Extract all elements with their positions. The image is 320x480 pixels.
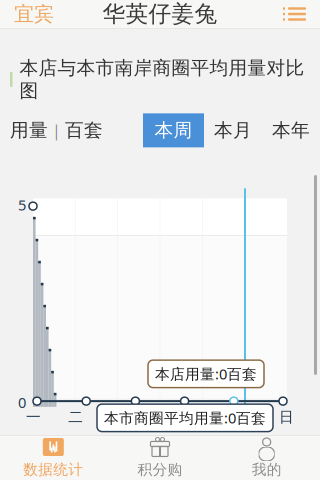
button[interactable]: 菜单 xyxy=(283,1,320,27)
staticText: | xyxy=(52,120,61,141)
button[interactable]: 数据统计 xyxy=(0,431,107,480)
staticText: 本月 xyxy=(214,119,252,142)
staticText: 本周 xyxy=(154,119,192,142)
staticText: 六 xyxy=(237,408,252,426)
staticText: 本市商圈平均用量:0百套 xyxy=(104,408,266,428)
staticText: 二 xyxy=(68,408,83,426)
staticText: 商圈平均用量 xyxy=(172,434,262,452)
button[interactable]: 本周 xyxy=(143,113,204,147)
staticText: 百套 xyxy=(65,119,103,142)
staticText: 华英仔姜兔 xyxy=(102,0,217,28)
staticText: 日 xyxy=(279,408,294,426)
staticText: 数据统计 xyxy=(23,460,83,478)
staticText: 宜宾 xyxy=(14,2,54,26)
button[interactable]: 积分购 xyxy=(107,431,213,480)
button[interactable]: 本年 xyxy=(262,113,320,147)
staticText: 三 xyxy=(110,408,125,426)
staticText: 本店用量:0百套 xyxy=(155,364,257,384)
staticText: 本店与本市南岸商圈平均用量对比图 xyxy=(19,56,304,102)
staticText: 本店用量 xyxy=(45,434,105,452)
staticText: 四 xyxy=(152,408,167,426)
staticText: 一 xyxy=(26,408,41,426)
button[interactable]: 我的 xyxy=(213,431,320,480)
staticText: 用量 xyxy=(10,119,48,142)
button[interactable]: 宜宾 xyxy=(0,0,54,32)
button[interactable]: 本月 xyxy=(204,113,262,147)
staticText: 本年 xyxy=(272,119,310,142)
staticText: 5 xyxy=(18,195,26,215)
staticText: 0 xyxy=(18,393,26,412)
staticText: 积分购 xyxy=(137,460,182,478)
staticText: 我的 xyxy=(252,460,282,478)
staticText: 五 xyxy=(195,408,210,426)
